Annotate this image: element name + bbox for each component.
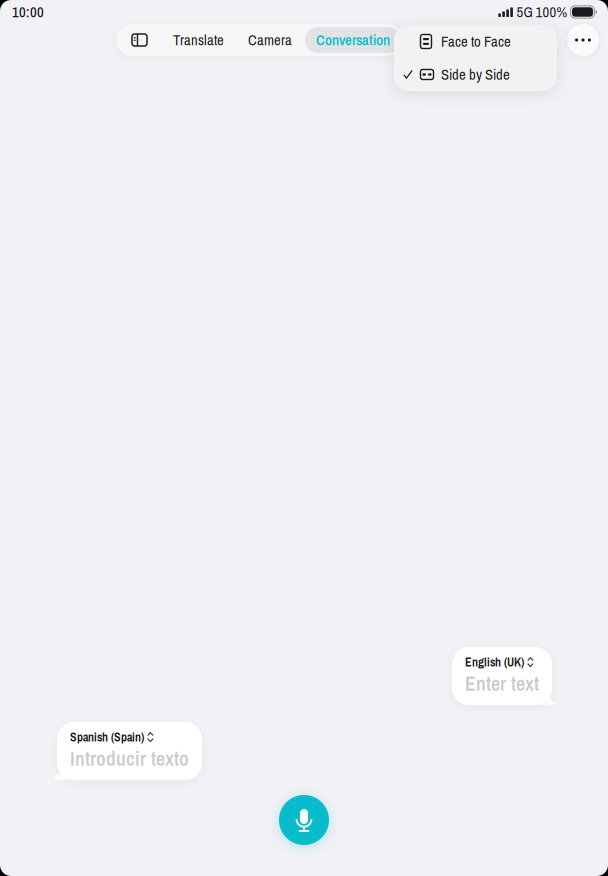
- staticText: Conversation: [316, 30, 390, 50]
- staticText: Side by Side: [441, 65, 510, 84]
- button[interactable]: Conversation: [304, 27, 402, 53]
- staticText: Camera: [248, 30, 292, 50]
- staticText: Spanish (Spain): [70, 729, 144, 745]
- staticText: 5G 100%: [514, 2, 571, 22]
- staticText: Face to Face: [441, 32, 511, 51]
- button[interactable]: Record: [279, 795, 329, 845]
- staticText: Translate: [173, 30, 224, 50]
- button[interactable]: Face to Face: [394, 25, 557, 58]
- button[interactable]: More: [567, 24, 599, 56]
- staticText: English (UK): [465, 654, 524, 670]
- button[interactable]: Spanish (Spain): [70, 729, 154, 745]
- button[interactable]: Camera: [236, 24, 304, 56]
- staticText: Enter text: [465, 670, 539, 697]
- button[interactable]: Translate: [161, 24, 236, 56]
- button[interactable]: Sidebar: [118, 24, 161, 56]
- staticText: 10:00: [12, 2, 44, 22]
- staticText: Introducir texto: [70, 745, 189, 772]
- button[interactable]: English (UK): [465, 654, 534, 670]
- button[interactable]: Side by Side: [394, 58, 557, 91]
